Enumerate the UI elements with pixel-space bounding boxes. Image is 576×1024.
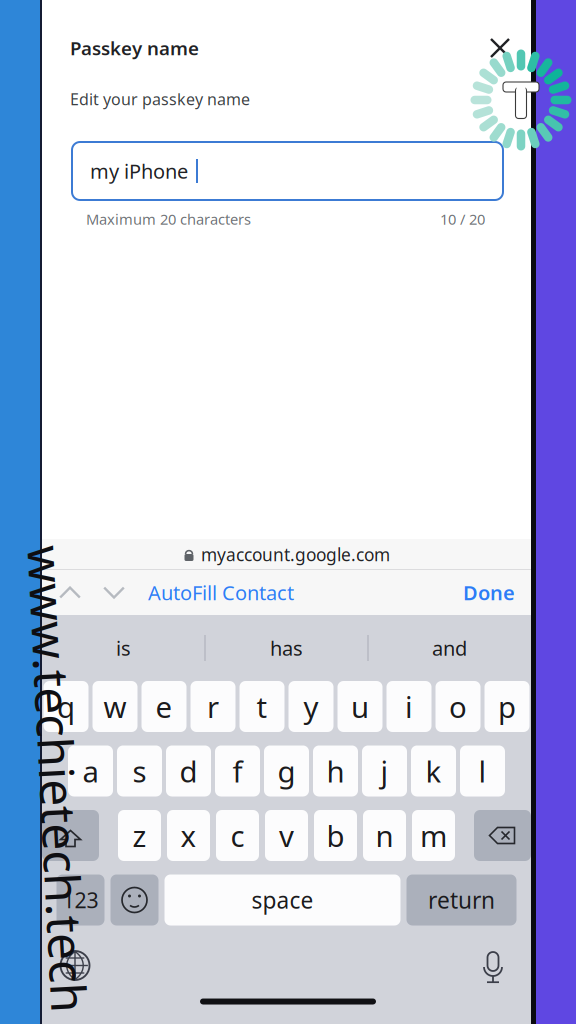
button[interactable]: Done [463, 570, 531, 615]
button[interactable]: s [117, 745, 162, 796]
button[interactable]: p [484, 681, 529, 732]
staticText: m [420, 816, 447, 855]
staticText: h [326, 751, 344, 790]
staticText: k [425, 751, 441, 790]
staticText: z [132, 816, 146, 855]
staticText: AutoFill Contact [148, 579, 294, 606]
button[interactable]: i [386, 681, 431, 732]
button[interactable]: d [166, 745, 211, 796]
button[interactable]: m [412, 810, 455, 861]
staticText: u [351, 687, 369, 726]
staticText: c [230, 816, 244, 855]
staticText: y [303, 687, 318, 726]
button[interactable]: e [141, 681, 186, 732]
button[interactable]: t [239, 681, 284, 732]
staticText: v [279, 816, 294, 855]
staticText: b [326, 816, 344, 855]
button[interactable]: q [43, 681, 88, 732]
button[interactable]: Next field [92, 570, 136, 615]
staticText: e [155, 687, 172, 726]
button[interactable]: k [411, 745, 456, 796]
button[interactable]: is [42, 615, 204, 681]
button[interactable]: y [288, 681, 333, 732]
button[interactable]: and [368, 615, 530, 681]
staticText: Passkey name [70, 36, 199, 60]
button[interactable]: has [205, 615, 367, 681]
button[interactable]: Shift [42, 810, 99, 861]
button[interactable]: myaccount.google.com [42, 539, 531, 570]
staticText: has [270, 635, 303, 661]
staticText: x [180, 816, 196, 855]
staticText: t [256, 687, 267, 726]
staticText: j [380, 751, 388, 790]
button[interactable]: return [406, 874, 516, 925]
staticText: Done [463, 579, 515, 606]
staticText: n [375, 816, 393, 855]
staticText: r [207, 687, 219, 726]
staticText: return [428, 885, 495, 915]
staticText: o [449, 687, 467, 726]
button[interactable]: w [92, 681, 137, 732]
button[interactable]: x [167, 810, 210, 861]
button[interactable]: 123 [56, 874, 104, 925]
button[interactable]: a [68, 745, 113, 796]
button[interactable]: b [314, 810, 357, 861]
button[interactable]: AutoFill Contact [136, 570, 294, 615]
button[interactable]: Previous field [48, 570, 92, 615]
button[interactable]: space [164, 874, 400, 925]
button[interactable]: h [313, 745, 358, 796]
staticText: s [132, 751, 146, 790]
staticText: q [57, 687, 75, 726]
staticText: l [478, 751, 486, 790]
staticText: g [277, 751, 295, 790]
button[interactable]: Emoji [110, 874, 158, 925]
button[interactable]: u [337, 681, 382, 732]
button[interactable]: Dictation [467, 939, 519, 991]
staticText: 10 / 20 [440, 209, 485, 229]
button[interactable]: c [216, 810, 259, 861]
staticText: i [405, 687, 413, 726]
button[interactable]: j [362, 745, 407, 796]
staticText: 123 [62, 886, 98, 914]
button[interactable]: Close [483, 31, 517, 65]
button[interactable]: f [215, 745, 260, 796]
staticText: w [103, 687, 126, 726]
staticText: d [179, 751, 197, 790]
staticText: space [251, 885, 313, 915]
button[interactable]: Delete [474, 810, 531, 861]
button[interactable]: g [264, 745, 309, 796]
button[interactable]: o [435, 681, 480, 732]
button[interactable]: n [363, 810, 406, 861]
staticText: Maximum 20 characters [86, 209, 251, 229]
staticText: myaccount.google.com [201, 543, 390, 566]
staticText: a [82, 751, 98, 790]
staticText: www.techietech.tech [0, 747, 292, 811]
button[interactable]: l [460, 745, 505, 796]
staticText: Edit your passkey name [70, 88, 250, 110]
staticText: p [498, 687, 516, 726]
staticText: f [232, 751, 242, 790]
staticText: my iPhone [90, 158, 188, 184]
button[interactable]: r [190, 681, 235, 732]
button[interactable]: z [118, 810, 161, 861]
button[interactable]: Switch keyboard [49, 939, 101, 991]
staticText: is [116, 635, 131, 661]
staticText: and [432, 635, 467, 661]
button[interactable]: v [265, 810, 308, 861]
